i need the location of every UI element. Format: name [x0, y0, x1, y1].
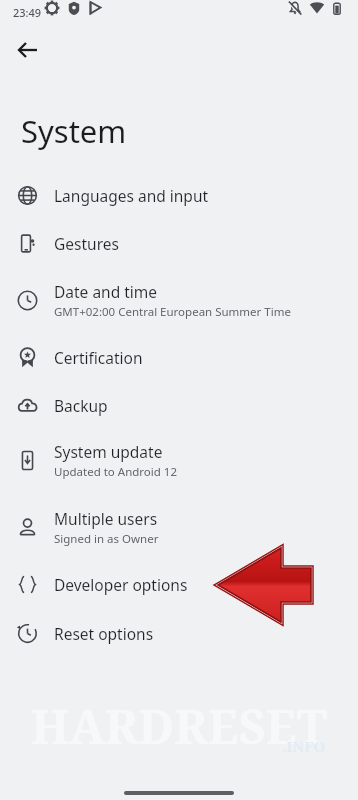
button[interactable]: Certification: [0, 334, 358, 380]
staticText: Certification: [54, 347, 143, 368]
staticText: GMT+02:00 Central European Summer Time: [54, 304, 291, 320]
button[interactable]: Back: [6, 28, 50, 72]
staticText: .INFO: [282, 736, 326, 756]
button[interactable]: Developer options: [0, 561, 358, 607]
staticText: System update: [54, 441, 163, 462]
staticText: Multiple users: [54, 508, 158, 529]
button[interactable]: Gestures: [0, 220, 358, 266]
staticText: Languages and input: [54, 185, 209, 206]
button[interactable]: Date and time: [0, 273, 358, 327]
staticText: System: [21, 110, 127, 152]
staticText: Developer options: [54, 574, 188, 595]
staticText: Updated to Android 12: [54, 464, 177, 480]
button[interactable]: Backup: [0, 382, 358, 428]
button[interactable]: Multiple users: [0, 500, 358, 554]
staticText: 23:49: [13, 5, 42, 20]
staticText: HARDRESET: [0, 694, 358, 758]
staticText: Gestures: [54, 233, 119, 254]
staticText: Backup: [54, 395, 108, 416]
staticText: Date and time: [54, 281, 158, 302]
staticText: Reset options: [54, 623, 154, 644]
staticText: Signed in as Owner: [54, 531, 159, 547]
button[interactable]: Reset options: [0, 610, 358, 656]
button[interactable]: System update: [0, 433, 358, 487]
button[interactable]: Languages and input: [0, 172, 358, 218]
